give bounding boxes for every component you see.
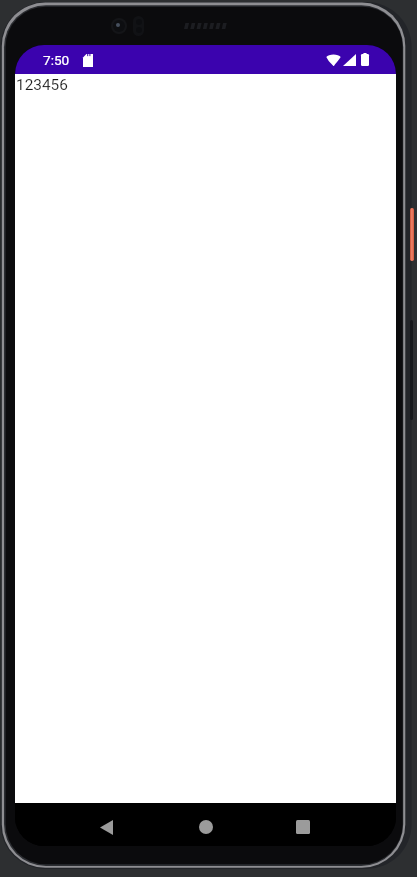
button[interactable]: Recent apps — [286, 810, 320, 844]
button[interactable]: Home — [189, 810, 223, 844]
staticText: 7:50 — [43, 52, 70, 68]
staticText: 123456 — [16, 76, 68, 94]
button[interactable]: Back — [89, 810, 123, 844]
